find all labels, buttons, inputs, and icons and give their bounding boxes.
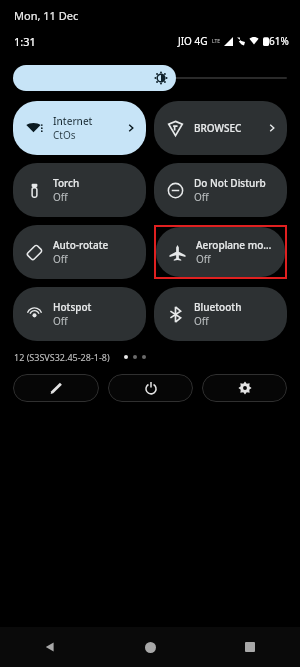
button[interactable]: Power <box>108 374 193 402</box>
staticText: Off <box>53 314 68 328</box>
staticText: 12 (S3SVS32.45-28-1-8) <box>14 351 110 363</box>
button[interactable]: Brightness <box>13 65 176 91</box>
staticText: Off <box>194 190 209 204</box>
staticText: 1:31 <box>14 34 36 49</box>
button[interactable]: Hotspot <box>13 287 146 341</box>
button[interactable]: Recents <box>200 627 300 667</box>
button[interactable]: Torch <box>13 163 146 217</box>
button[interactable]: Aeroplane mode <box>156 227 285 277</box>
staticText: Torch <box>53 176 80 190</box>
button[interactable]: Back <box>0 627 100 667</box>
staticText: Auto-rotate <box>53 238 109 252</box>
button[interactable]: BROWSEC <box>154 101 287 155</box>
staticText: Bluetooth <box>194 300 242 314</box>
staticText: Off <box>196 252 211 266</box>
staticText: CtOs <box>53 128 76 142</box>
button[interactable]: Settings <box>202 374 287 402</box>
button[interactable]: Auto-rotate <box>13 225 146 279</box>
staticText: Mon, 11 Dec <box>14 8 79 23</box>
button[interactable]: Edit <box>13 374 99 402</box>
button[interactable]: Do Not Disturb <box>154 163 287 217</box>
staticText: Aeroplane mode <box>196 238 275 252</box>
staticText: Internet <box>53 114 93 128</box>
staticText: Off <box>53 252 68 266</box>
staticText: Off <box>53 190 68 204</box>
button[interactable]: Bluetooth <box>154 287 287 341</box>
staticText: LTE <box>212 38 221 45</box>
staticText: Hotspot <box>53 300 92 314</box>
button[interactable]: Home <box>100 627 200 667</box>
staticText: JIO 4G <box>178 34 208 48</box>
staticText: Do Not Disturb <box>194 176 266 190</box>
staticText: BROWSEC <box>194 121 242 135</box>
staticText: 61% <box>269 34 289 48</box>
button[interactable]: Internet <box>13 101 146 155</box>
staticText: Off <box>194 314 209 328</box>
